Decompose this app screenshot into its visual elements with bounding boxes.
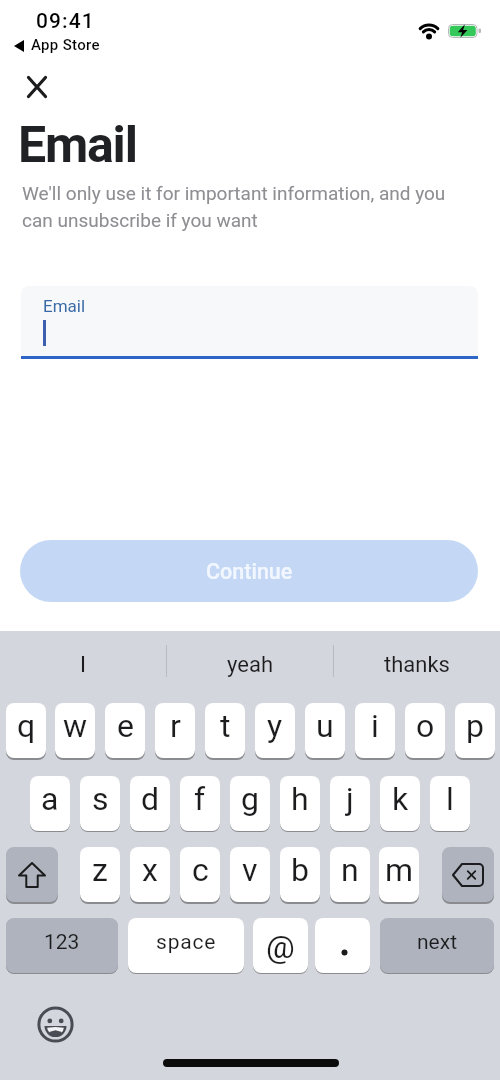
- button[interactable]: App Store: [31, 36, 100, 54]
- staticText: Continue: [206, 559, 293, 584]
- button[interactable]: thanks: [334, 646, 500, 684]
- button[interactable]: n: [330, 847, 370, 902]
- button[interactable]: Continue: [20, 540, 478, 602]
- staticText: @: [266, 928, 295, 966]
- button[interactable]: k: [380, 776, 420, 831]
- staticText: n: [341, 851, 359, 889]
- staticText: u: [316, 707, 334, 745]
- button[interactable]: x: [130, 847, 170, 902]
- staticText: d: [141, 780, 160, 818]
- button[interactable]: Email: [21, 286, 478, 359]
- staticText: We'll only use it for important informat…: [22, 182, 446, 231]
- button[interactable]: r: [155, 703, 195, 758]
- button[interactable]: [6, 847, 58, 902]
- staticText: l: [446, 780, 454, 818]
- staticText: next: [417, 930, 458, 955]
- staticText: x: [142, 851, 158, 889]
- button[interactable]: j: [330, 776, 370, 831]
- button[interactable]: 123: [6, 918, 118, 973]
- staticText: s: [92, 780, 109, 818]
- button[interactable]: h: [280, 776, 320, 831]
- staticText: t: [220, 707, 231, 745]
- button[interactable]: yeah: [167, 646, 333, 684]
- staticText: i: [371, 707, 379, 745]
- staticText: f: [194, 780, 206, 818]
- button[interactable]: [36, 1005, 76, 1045]
- button[interactable]: c: [180, 847, 220, 902]
- staticText: w: [63, 707, 88, 745]
- button[interactable]: v: [230, 847, 270, 902]
- staticText: space: [156, 930, 217, 955]
- staticText: thanks: [384, 652, 450, 678]
- staticText: r: [170, 707, 181, 745]
- button[interactable]: s: [80, 776, 120, 831]
- staticText: h: [291, 780, 309, 818]
- staticText: p: [466, 707, 484, 745]
- staticText: y: [267, 707, 283, 745]
- button[interactable]: w: [55, 703, 95, 758]
- button[interactable]: g: [230, 776, 270, 831]
- button[interactable]: b: [280, 847, 320, 902]
- button[interactable]: d: [130, 776, 170, 831]
- staticText: q: [17, 707, 36, 745]
- staticText: yeah: [227, 652, 274, 678]
- button[interactable]: [18, 68, 54, 104]
- staticText: j: [346, 780, 354, 818]
- button[interactable]: o: [405, 703, 445, 758]
- button[interactable]: u: [305, 703, 345, 758]
- staticText: I: [80, 652, 86, 678]
- staticText: m: [385, 851, 414, 889]
- button[interactable]: [442, 847, 494, 902]
- staticText: g: [241, 780, 259, 818]
- button[interactable]: [315, 918, 370, 973]
- staticText: k: [392, 780, 409, 818]
- button[interactable]: q: [6, 703, 46, 758]
- staticText: b: [291, 851, 309, 889]
- button[interactable]: t: [205, 703, 245, 758]
- button[interactable]: y: [255, 703, 295, 758]
- staticText: o: [416, 707, 435, 745]
- staticText: 123: [44, 930, 80, 955]
- button[interactable]: z: [80, 847, 120, 902]
- button[interactable]: e: [105, 703, 145, 758]
- staticText: a: [41, 780, 59, 818]
- button[interactable]: l: [430, 776, 470, 831]
- button[interactable]: @: [253, 918, 308, 973]
- button[interactable]: a: [30, 776, 70, 831]
- button[interactable]: f: [180, 776, 220, 831]
- staticText: v: [242, 851, 258, 889]
- button[interactable]: next: [380, 918, 494, 973]
- button[interactable]: i: [355, 703, 395, 758]
- button[interactable]: p: [455, 703, 495, 758]
- button[interactable]: space: [128, 918, 244, 973]
- staticText: Email: [43, 296, 86, 316]
- staticText: e: [117, 707, 134, 745]
- button[interactable]: I: [0, 646, 166, 684]
- button[interactable]: m: [379, 847, 419, 902]
- staticText: 09:41: [36, 9, 95, 34]
- staticText: z: [92, 851, 108, 889]
- staticText: Email: [18, 116, 137, 175]
- staticText: c: [192, 851, 209, 889]
